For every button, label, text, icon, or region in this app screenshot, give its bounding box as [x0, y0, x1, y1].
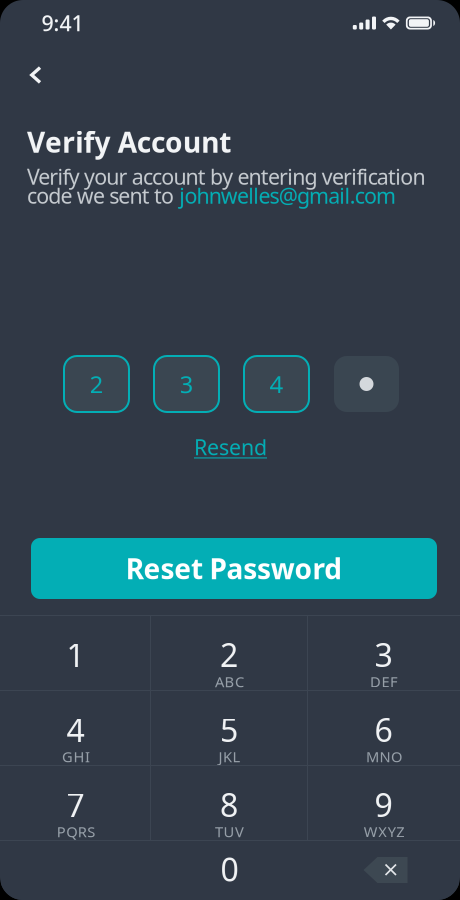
staticText: MNO	[366, 747, 402, 766]
button[interactable]: 3 DEF	[308, 616, 459, 690]
staticText: GHI	[62, 747, 90, 766]
staticText: JKL	[218, 747, 240, 766]
staticText: WXYZ	[364, 822, 404, 841]
button[interactable]: 9 WXYZ	[308, 766, 459, 840]
button[interactable]: 4 GHI	[1, 691, 150, 765]
staticText: PQRS	[57, 822, 95, 841]
staticText: Reset Password	[126, 550, 342, 587]
staticText: 3	[179, 368, 193, 400]
staticText: 3	[374, 633, 392, 676]
staticText: Verify Account	[27, 123, 231, 161]
button[interactable]: 5 JKL	[151, 691, 307, 765]
button[interactable]: Reset Password	[31, 538, 437, 599]
button[interactable]: 0	[151, 841, 308, 900]
staticText: TUV	[215, 822, 244, 841]
button[interactable]: Digit 2	[64, 356, 129, 412]
staticText: 5	[220, 708, 238, 751]
button[interactable]: 7 PQRS	[1, 766, 150, 840]
staticText: 9	[374, 783, 392, 826]
button[interactable]: Digit 3	[154, 356, 219, 412]
staticText: DEF	[370, 672, 398, 691]
button[interactable]: 2 ABC	[151, 616, 307, 690]
staticText: 4	[269, 368, 283, 400]
staticText: 7	[66, 783, 84, 826]
staticText: ABC	[215, 672, 244, 691]
staticText: 8	[220, 783, 238, 826]
staticText: 9:41	[41, 9, 83, 37]
staticText: 4	[66, 708, 84, 751]
staticText: 2	[220, 633, 238, 676]
staticText: johnwelles@gmail.com	[179, 181, 396, 210]
button[interactable]: Delete	[308, 841, 459, 900]
button[interactable]: Back	[12, 53, 60, 97]
staticText: 0	[220, 848, 238, 890]
staticText: 6	[374, 708, 392, 751]
staticText: Resend	[194, 433, 267, 461]
staticText: 1	[66, 633, 84, 676]
button[interactable]: Verification code entry	[334, 356, 399, 412]
staticText: code we sent to	[27, 181, 179, 210]
staticText: 2	[89, 368, 103, 400]
button[interactable]: Resend	[180, 429, 280, 465]
button[interactable]: Digit 4	[244, 356, 309, 412]
staticText: Verify your account by entering verifica…	[27, 162, 425, 191]
button[interactable]: 6 MNO	[308, 691, 459, 765]
button[interactable]: 8 TUV	[151, 766, 307, 840]
button[interactable]: 1	[1, 616, 150, 690]
